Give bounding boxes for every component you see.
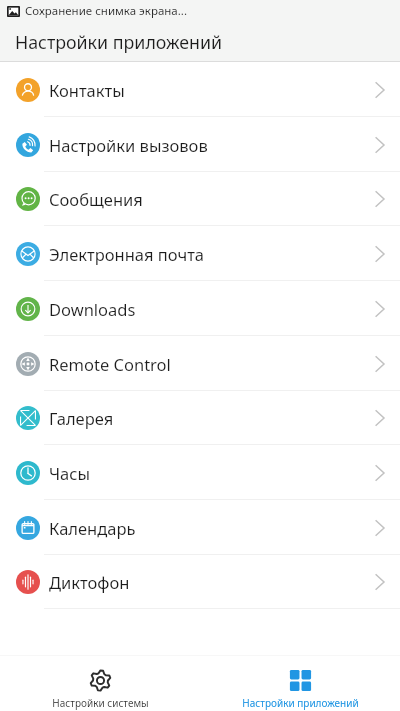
staticText: Сообщения (49, 188, 143, 210)
button[interactable]: Настройки вызовов (0, 117, 400, 172)
button[interactable]: Настройки приложений (200, 656, 400, 711)
staticText: Настройки приложений (15, 30, 223, 54)
button[interactable]: Электронная почта (0, 226, 400, 281)
button[interactable]: Downloads (0, 281, 400, 336)
button[interactable]: Галерея (0, 390, 400, 445)
staticText: Настройки приложений (242, 696, 359, 710)
button[interactable]: Настройки системы (0, 656, 200, 711)
staticText: Календарь (49, 517, 136, 539)
staticText: Remote Control (49, 353, 171, 375)
staticText: Галерея (49, 407, 114, 429)
button[interactable]: Remote Control (0, 336, 400, 391)
staticText: Электронная почта (49, 243, 205, 265)
staticText: Настройки вызовов (49, 134, 208, 156)
staticText: Часы (49, 462, 90, 484)
staticText: Сохранение снимка экрана... (25, 3, 187, 19)
button[interactable]: Календарь (0, 500, 400, 555)
button[interactable]: Часы (0, 445, 400, 500)
button[interactable]: Диктофон (0, 554, 400, 609)
staticText: Контакты (49, 79, 125, 101)
staticText: Downloads (49, 298, 136, 320)
button[interactable]: Сообщения (0, 171, 400, 226)
button[interactable]: Контакты (0, 62, 400, 117)
staticText: Настройки системы (52, 696, 149, 710)
staticText: Диктофон (49, 571, 130, 593)
